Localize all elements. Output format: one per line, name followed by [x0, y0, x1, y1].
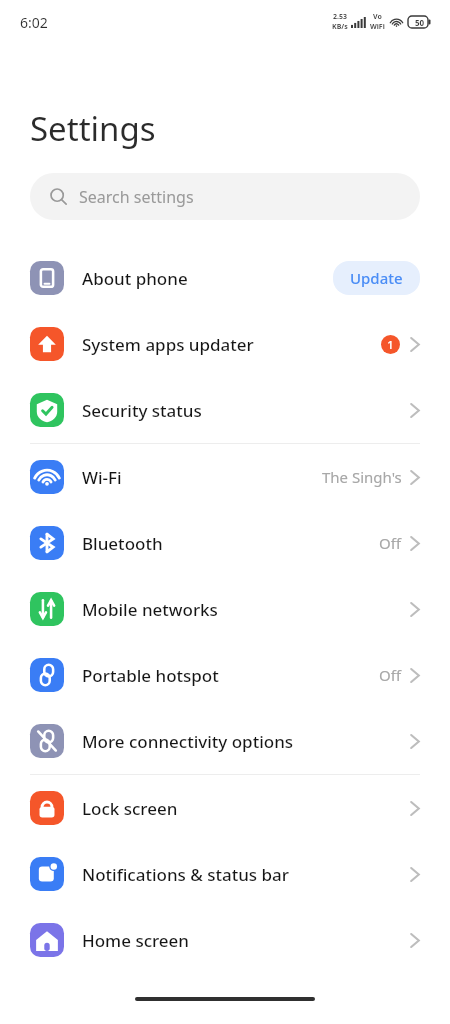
button[interactable]: Portable hotspot [0, 642, 450, 708]
staticText: Home screen [82, 929, 410, 952]
staticText: 2.53 [333, 12, 347, 22]
staticText: Settings [30, 106, 156, 151]
staticText: KB/s [332, 22, 348, 32]
staticText: Bluetooth [82, 532, 379, 555]
button[interactable]: Wi-Fi [0, 444, 450, 510]
staticText: Vo [373, 12, 382, 22]
staticText: 6:02 [20, 13, 48, 32]
staticText: Update [350, 268, 403, 288]
staticText: WiFi [370, 22, 385, 32]
staticText: The Singh's [322, 467, 402, 487]
staticText: About phone [82, 267, 333, 290]
staticText: Security status [82, 399, 410, 422]
button[interactable]: More connectivity options [0, 708, 450, 774]
staticText: Off [379, 533, 402, 553]
staticText: Notifications & status bar [82, 863, 410, 886]
staticText: Off [379, 665, 402, 685]
button[interactable]: About phone [0, 245, 450, 311]
button[interactable]: Update [333, 261, 420, 295]
staticText: 50 [415, 17, 425, 28]
button[interactable]: System apps updater [0, 311, 450, 377]
button[interactable]: Bluetooth [0, 510, 450, 576]
staticText: Lock screen [82, 797, 410, 820]
button[interactable]: Search settings [30, 173, 420, 220]
button[interactable]: Home screen [0, 907, 450, 973]
button[interactable]: Mobile networks [0, 576, 450, 642]
button[interactable]: Security status [0, 377, 450, 443]
staticText: More connectivity options [82, 730, 410, 753]
staticText: Mobile networks [82, 598, 410, 621]
staticText: Wi-Fi [82, 466, 322, 489]
staticText: System apps updater [82, 333, 381, 356]
staticText: 1 [387, 337, 394, 352]
staticText: Portable hotspot [82, 664, 379, 687]
button[interactable]: Lock screen [0, 775, 450, 841]
button[interactable]: Notifications & status bar [0, 841, 450, 907]
staticText: Search settings [79, 186, 194, 208]
